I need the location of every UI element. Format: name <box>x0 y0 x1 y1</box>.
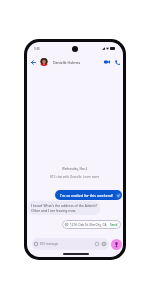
button[interactable]: 12 N. Oak St. Elm City, CA <box>62 220 121 229</box>
other: Emoji <box>34 242 38 246</box>
staticText: 9:30 <box>34 47 40 51</box>
other: Stickers <box>95 242 99 246</box>
staticText: 12 N. Oak St. Elm City, CA <box>70 223 107 227</box>
staticText: I know! What's the address of the Airbnb… <box>31 203 97 213</box>
staticText: Danielle Holmes <box>53 60 81 65</box>
button[interactable]: I'm so excited for this weekend! <box>55 190 122 200</box>
staticText: Send <box>110 223 118 227</box>
button[interactable]: Voice message <box>111 239 122 250</box>
staticText: Wednesday, Nov 4 <box>62 167 88 171</box>
button[interactable]: Video call <box>102 57 112 67</box>
button[interactable]: I know! What's the address of the Airbnb… <box>28 201 100 215</box>
button[interactable]: Emoji <box>32 238 109 250</box>
staticText: RCS message <box>40 242 59 246</box>
button[interactable]: Call <box>112 57 122 67</box>
staticText: RCS chat with Danielle. Learn more <box>50 175 100 179</box>
button[interactable]: Back <box>29 58 38 67</box>
other: Gallery <box>102 242 106 246</box>
staticText: I'm so excited for this weekend! <box>60 193 114 198</box>
